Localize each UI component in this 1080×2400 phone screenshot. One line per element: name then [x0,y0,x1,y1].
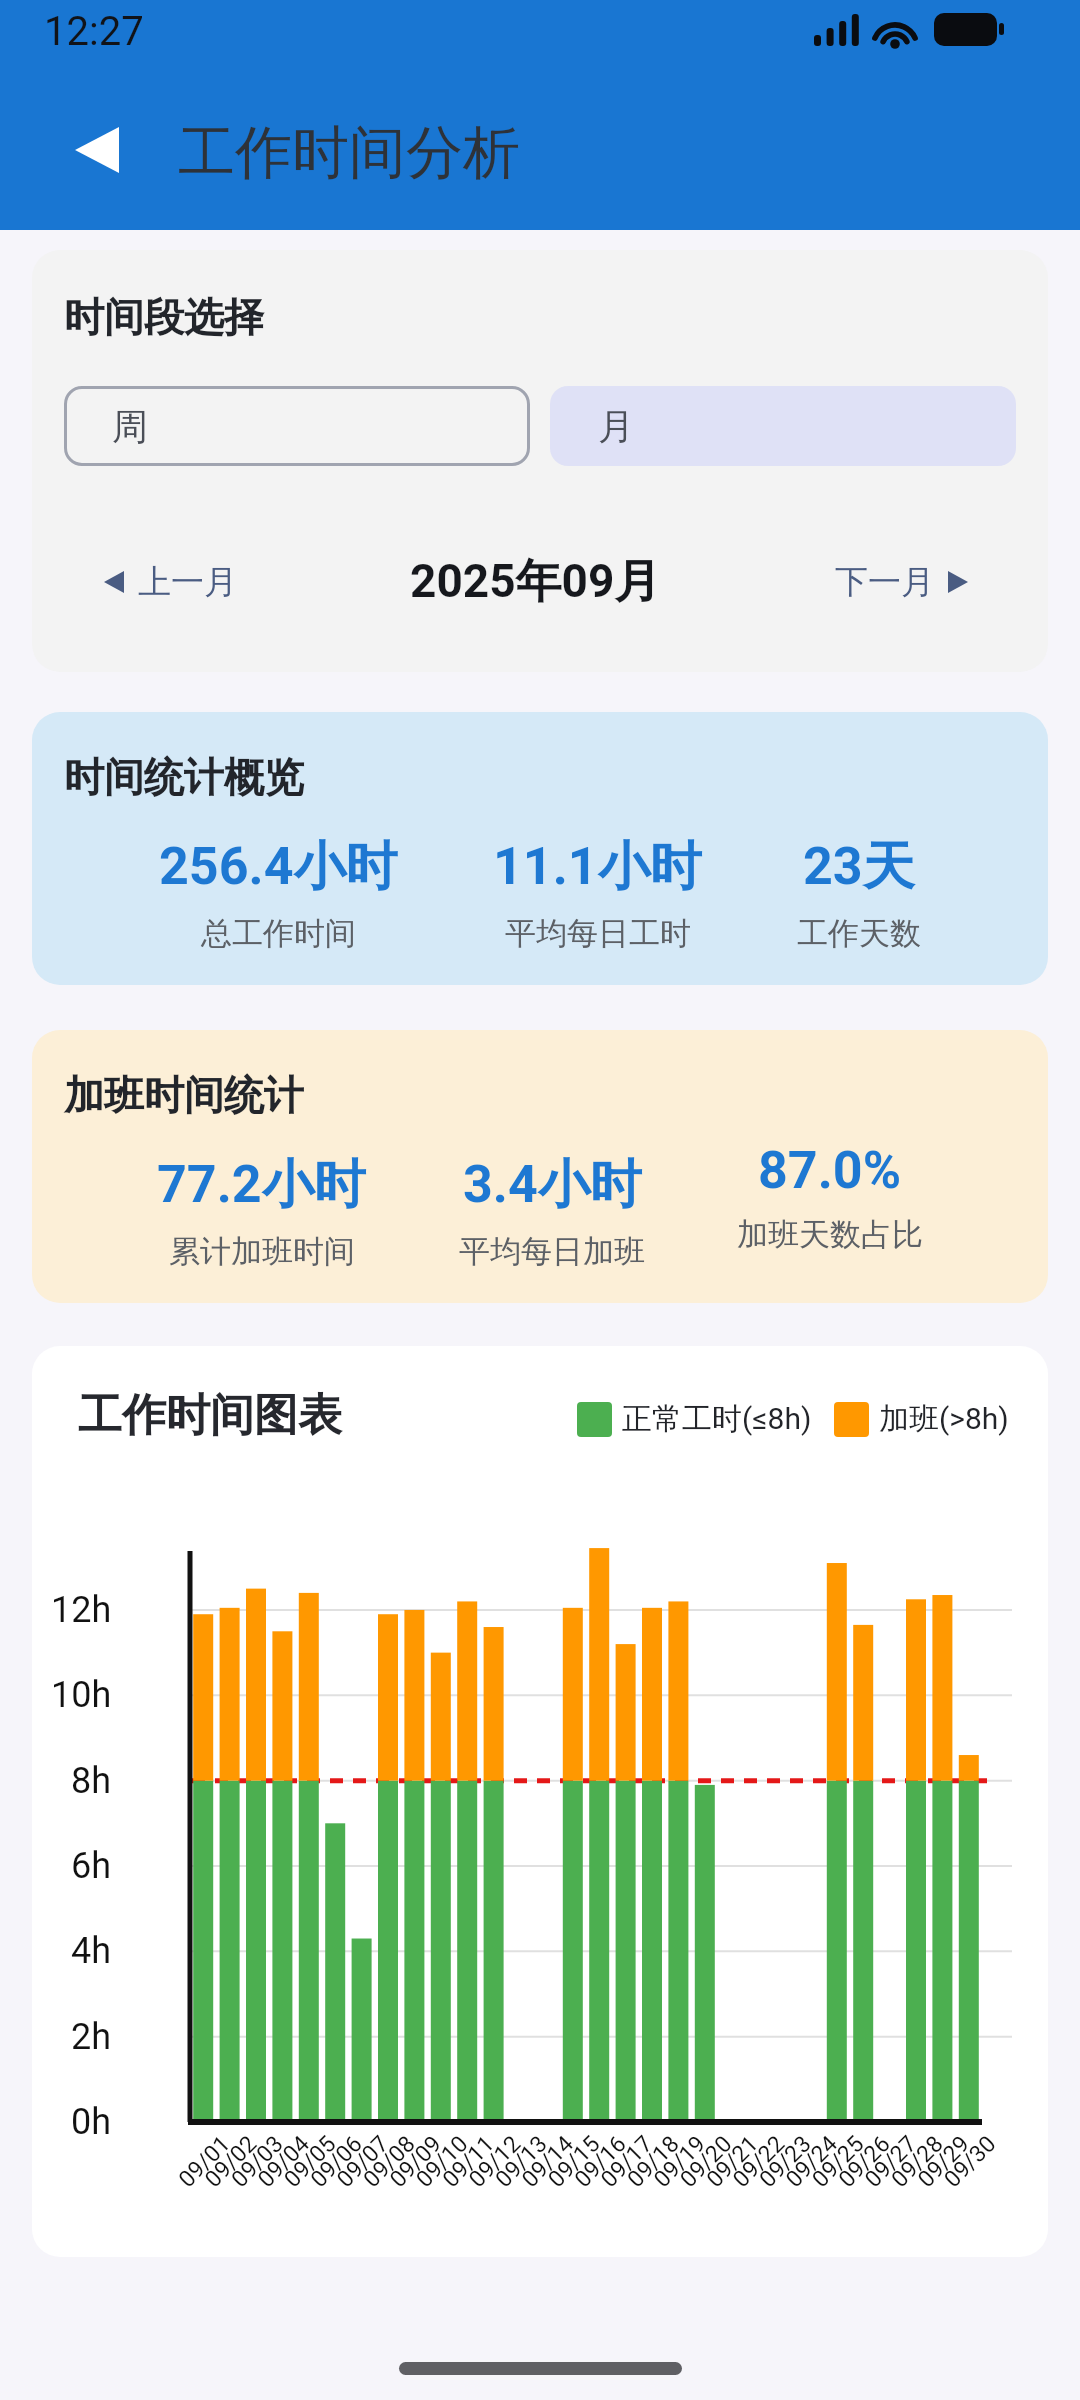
staticText: 累计加班时间 [169,1232,355,1271]
staticText: 23天 [803,834,915,900]
button[interactable]: 周 [64,386,530,466]
button[interactable] [75,127,119,173]
staticText: 2025年09月 [410,553,661,611]
staticText: 上一月 [138,561,237,603]
staticText: 77.2小时 [157,1152,366,1218]
staticText: 平均每日工时 [505,914,691,953]
staticText: 12:27 [44,8,144,55]
staticText: 工作时间图表 [78,1388,342,1443]
staticText: 时间统计概览 [64,752,304,802]
staticText: 平均每日加班 [459,1232,645,1271]
staticText: 总工作时间 [201,914,356,953]
staticText: 加班时间统计 [64,1070,304,1120]
staticText: 月 [598,404,634,449]
staticText: 周 [112,404,148,449]
staticText: 11.1小时 [493,834,702,900]
staticText: 256.4小时 [159,834,398,900]
staticText: 加班天数占比 [737,1215,923,1254]
staticText: 工作天数 [797,914,921,953]
button[interactable]: 月 [550,386,1016,466]
staticText: 87.0% [758,1140,902,1201]
button[interactable]: 下一月 [835,561,968,603]
staticText: 时间段选择 [64,292,264,342]
staticText: 3.4小时 [463,1152,642,1218]
staticText: 正常工时(≤8h) [622,1400,812,1438]
staticText: 下一月 [835,561,934,603]
staticText: 加班(>8h) [879,1400,1009,1438]
staticText: 工作时间分析 [178,117,520,189]
button[interactable]: 上一月 [104,561,237,603]
